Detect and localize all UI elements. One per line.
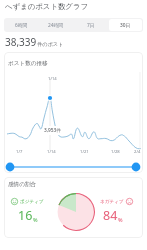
staticText: % (118, 216, 123, 223)
staticText: ネガティブ (100, 199, 124, 205)
button[interactable]: 30日 (109, 19, 142, 31)
staticText: 1/14 (48, 76, 57, 82)
staticText: 7日 (87, 22, 95, 29)
staticText: 16 (18, 207, 33, 224)
button[interactable]: 期間スライダー (0, 160, 147, 174)
staticText: へずまのポスト数グラフ (5, 2, 89, 11)
staticText: 1/7 (16, 149, 23, 155)
staticText: 84 (103, 207, 118, 224)
staticText: 1/21 (80, 149, 89, 155)
staticText: 30日 (120, 22, 131, 29)
staticText: 6時間 (15, 22, 28, 29)
button[interactable]: 6時間 (5, 19, 37, 31)
button[interactable]: 24時間 (39, 19, 72, 31)
staticText: 2/4 (134, 149, 141, 155)
staticText: 24時間 (48, 22, 64, 29)
staticText: ポジティブ (20, 199, 44, 205)
staticText: 1/28 (111, 149, 120, 155)
staticText: 感情の割合 (8, 181, 37, 188)
button[interactable]: 7日 (74, 19, 107, 31)
staticText: 件のポスト (37, 41, 64, 48)
staticText: 3,953件 (44, 127, 62, 134)
staticText: ポスト数の推移 (8, 60, 48, 67)
staticText: % (33, 216, 38, 223)
staticText: 1/14 (47, 149, 56, 155)
staticText: 38,339 (5, 35, 37, 49)
